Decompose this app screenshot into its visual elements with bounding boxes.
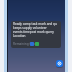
staticText: keeps supply volunteer xyxy=(13,26,47,30)
staticText: Remaining time xyxy=(13,42,36,46)
staticText: Ready camp task mark and qu xyxy=(13,22,57,26)
staticText: Location xyxy=(13,34,26,38)
button[interactable]: Ready camp task mark and qu xyxy=(11,21,61,48)
button[interactable]: Settings xyxy=(56,60,63,67)
button[interactable]: Confirm xyxy=(35,42,39,46)
button[interactable]: Accept xyxy=(30,42,34,46)
staticText: events timepost mark query xyxy=(13,30,54,34)
